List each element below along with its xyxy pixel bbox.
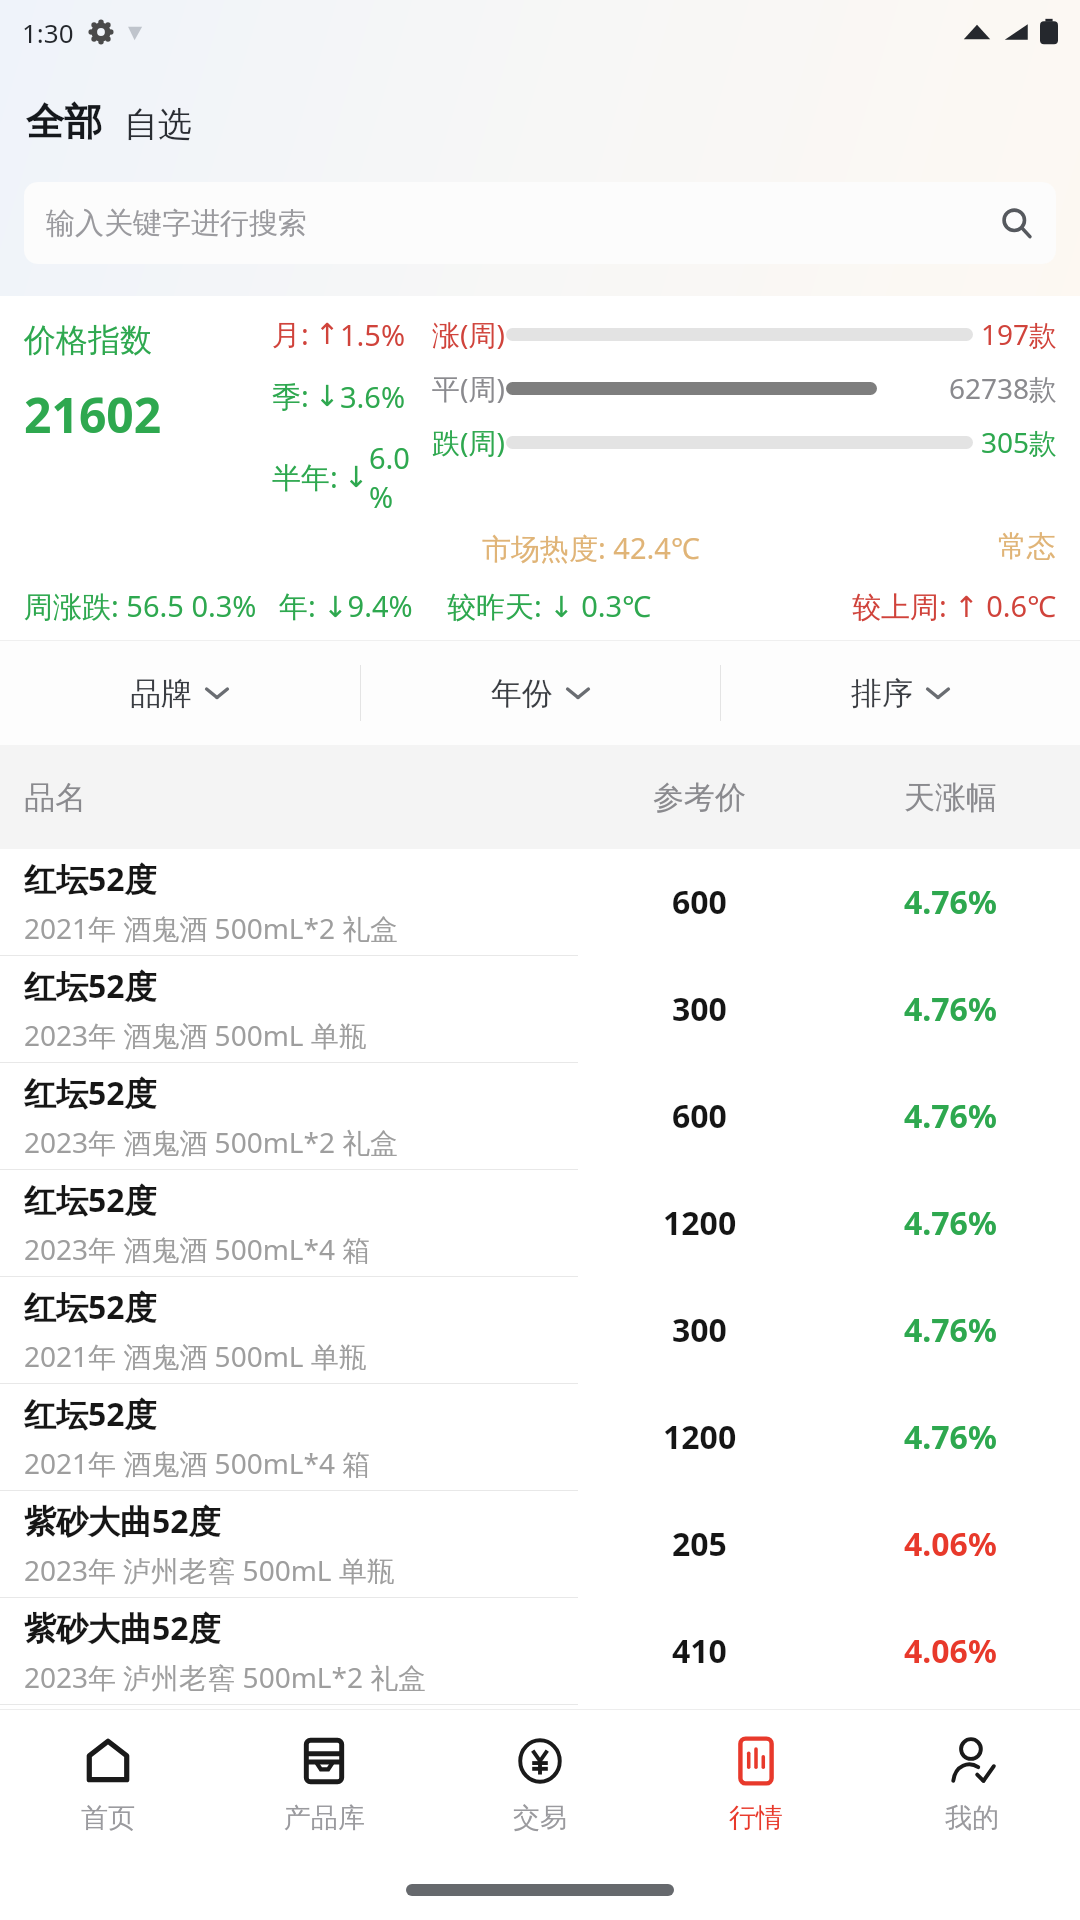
staticText: 300 (672, 987, 727, 1031)
staticText: 1.5% (340, 315, 406, 354)
button[interactable]: 年份 (361, 641, 720, 745)
staticText: 红坛52度 (24, 1392, 157, 1436)
staticText: 2023年 泸州老窖 500mL*2 礼盒 (24, 1658, 427, 1696)
staticText: 21602 (24, 382, 162, 447)
button[interactable]: 交易 (432, 1710, 648, 1860)
staticText: 较上周: ↑ 0.6℃ (852, 586, 1056, 626)
staticText: 较昨天: ↓ 0.3℃ (447, 586, 651, 626)
staticText: 品牌 (130, 674, 192, 713)
other: 行情 (730, 1735, 782, 1787)
other: 交易 (514, 1735, 566, 1787)
staticText: 产品库 (284, 1801, 365, 1835)
staticText: 4.76% (904, 1201, 997, 1245)
staticText: ↓ (315, 379, 340, 413)
staticText: 年份 (491, 674, 553, 713)
other: Search (1000, 206, 1034, 240)
staticText: 1200 (663, 1415, 737, 1459)
staticText: 品名 (24, 778, 86, 817)
staticText: 市场热度: 42.4℃ (482, 528, 700, 568)
button[interactable]: 红坛52度 (0, 849, 1080, 956)
staticText: 205 (672, 1522, 727, 1566)
staticText: 2021年 酒鬼酒 500mL*4 箱 (24, 1444, 371, 1482)
button[interactable]: 红坛52度 (0, 1063, 1080, 1170)
button[interactable]: 红坛52度 (0, 1170, 1080, 1277)
staticText: 天涨幅 (904, 778, 997, 817)
button[interactable]: 自选 (122, 99, 194, 150)
staticText: 涨(周) (432, 315, 505, 353)
button[interactable]: 行情 (648, 1710, 864, 1860)
staticText: 我的 (945, 1801, 999, 1835)
staticText: 紫砂大曲52度 (24, 1606, 221, 1650)
staticText: 红坛52度 (24, 964, 157, 1008)
staticText: 600 (672, 880, 727, 924)
other: 我的 (946, 1735, 998, 1787)
staticText: 排序 (851, 674, 913, 713)
staticText: 4.06% (904, 1522, 997, 1566)
other: 首页 (82, 1735, 134, 1787)
staticText: 常态 (998, 528, 1056, 565)
staticText: 4.76% (904, 1415, 997, 1459)
staticText: 6.0% (369, 438, 432, 516)
staticText: 价格指数 (24, 320, 152, 360)
staticText: 红坛52度 (24, 1071, 157, 1115)
button[interactable]: 红坛52度 (0, 1384, 1080, 1491)
staticText: 行情 (729, 1801, 783, 1835)
staticText: 2021年 酒鬼酒 500mL 单瓶 (24, 1337, 367, 1375)
button[interactable]: 输入关键字进行搜索 (24, 182, 1056, 264)
staticText: 2023年 泸州老窖 500mL 单瓶 (24, 1551, 395, 1589)
staticText: 4.76% (904, 1094, 997, 1138)
other: 产品库 (298, 1735, 350, 1787)
button[interactable]: 红坛52度 (0, 1277, 1080, 1384)
staticText: 2023年 酒鬼酒 500mL 单瓶 (24, 1016, 367, 1054)
staticText: 首页 (81, 1801, 135, 1835)
staticText: 半年: (272, 457, 338, 497)
staticText: 62738款 (949, 369, 1058, 407)
staticText: 交易 (513, 1801, 567, 1835)
staticText: 周涨跌: 56.5 0.3% (24, 586, 257, 626)
staticText: 4.76% (904, 1308, 997, 1352)
staticText: 自选 (124, 103, 192, 146)
staticText: ↓ (344, 460, 369, 494)
staticText: 1:30 (22, 15, 74, 50)
staticText: 红坛52度 (24, 1285, 157, 1329)
button[interactable]: 紫砂大曲52度 (0, 1491, 1080, 1598)
staticText: 参考价 (653, 778, 746, 817)
staticText: 2021年 酒鬼酒 500mL*2 礼盒 (24, 909, 399, 947)
button[interactable]: 品牌 (0, 641, 360, 745)
staticText: ↑ (315, 317, 340, 351)
staticText: 410 (672, 1629, 727, 1673)
staticText: 全部 (26, 98, 102, 146)
staticText: 紫砂大曲52度 (24, 1499, 221, 1543)
staticText: 3.6% (340, 377, 406, 416)
button[interactable]: 首页 (0, 1710, 216, 1860)
staticText: 红坛52度 (24, 857, 157, 901)
staticText: 年: ↓9.4% (279, 586, 413, 626)
button[interactable]: 红坛52度 (0, 956, 1080, 1063)
staticText: 平(周) (432, 369, 505, 407)
button[interactable]: 我的 (864, 1710, 1080, 1860)
staticText: 1200 (663, 1201, 737, 1245)
staticText: 输入关键字进行搜索 (46, 205, 307, 242)
button[interactable]: 产品库 (216, 1710, 432, 1860)
staticText: 跌(周) (432, 423, 505, 461)
staticText: 红坛52度 (24, 1178, 157, 1222)
staticText: 4.76% (904, 880, 997, 924)
staticText: 4.76% (904, 987, 997, 1031)
button[interactable]: 全部 (24, 94, 104, 150)
staticText: 4.06% (904, 1629, 997, 1673)
button[interactable]: 排序 (721, 641, 1080, 745)
staticText: 季: (272, 376, 309, 416)
button[interactable]: 紫砂大曲52度 (0, 1598, 1080, 1705)
staticText: 月: (272, 314, 309, 354)
staticText: 197款 (981, 315, 1058, 353)
staticText: 2023年 酒鬼酒 500mL*2 礼盒 (24, 1123, 399, 1161)
staticText: 600 (672, 1094, 727, 1138)
staticText: 305款 (981, 423, 1058, 461)
staticText: 2023年 酒鬼酒 500mL*4 箱 (24, 1230, 371, 1268)
staticText: 300 (672, 1308, 727, 1352)
